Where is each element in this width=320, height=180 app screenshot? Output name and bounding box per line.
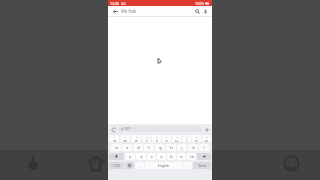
button[interactable]: 7 <box>172 135 181 142</box>
button[interactable]: k <box>188 144 198 151</box>
button[interactable]: 0 <box>202 135 211 142</box>
button[interactable]: . <box>183 162 192 169</box>
staticText: 2 <box>124 135 126 138</box>
staticText: r <box>146 138 148 142</box>
button[interactable]: j <box>177 144 187 151</box>
staticText: Enter <box>198 164 207 168</box>
staticText: , <box>139 164 140 168</box>
button[interactable]: a <box>111 144 121 151</box>
button[interactable]: life hak <box>121 6 193 16</box>
staticText: l <box>203 145 205 150</box>
button[interactable]: g <box>155 144 165 151</box>
staticText: 6 <box>166 135 168 138</box>
staticText: z <box>129 154 131 159</box>
staticText: m <box>190 154 194 159</box>
staticText: 3 <box>136 135 138 138</box>
staticText: o <box>195 138 198 142</box>
button[interactable]: x <box>136 153 146 160</box>
staticText: 12:06 <box>110 1 119 6</box>
button[interactable]: Touch indicator <box>22 150 48 176</box>
staticText: 0 <box>206 135 208 138</box>
button[interactable]: English <box>145 162 182 169</box>
staticText: u <box>175 138 178 142</box>
staticText: 4 <box>146 135 148 138</box>
staticText: i <box>186 138 188 142</box>
button[interactable]: z <box>125 153 135 160</box>
staticText: 8 <box>186 135 188 138</box>
button[interactable]: d <box>133 144 143 151</box>
staticText: e <box>135 138 138 142</box>
button[interactable]: Search <box>193 7 201 15</box>
button[interactable]: Apparel <box>82 150 108 176</box>
staticText: 5 <box>156 135 158 138</box>
staticText: life hak <box>121 8 137 14</box>
staticText: t <box>156 138 158 142</box>
button[interactable]: Enter <box>193 162 211 169</box>
button[interactable]: Google assistant <box>110 126 117 133</box>
button[interactable]: Emoji <box>125 162 134 169</box>
staticText: 4G <box>121 1 126 6</box>
button[interactable]: Shift <box>109 153 124 160</box>
button[interactable]: 5 <box>152 135 161 142</box>
button[interactable]: Emoji reaction <box>278 150 304 176</box>
button[interactable]: , <box>135 162 144 169</box>
staticText: . <box>187 164 188 168</box>
staticText: p <box>205 138 208 142</box>
button[interactable]: 9 <box>192 135 201 142</box>
staticText: b <box>170 154 173 159</box>
button[interactable]: n <box>177 153 186 160</box>
staticText: d <box>137 145 140 150</box>
staticText: 7 <box>176 135 178 138</box>
staticText: a <box>115 145 118 150</box>
button[interactable]: h <box>166 144 176 151</box>
staticText: s <box>126 145 128 150</box>
staticText: GIF <box>125 127 131 131</box>
staticText: y <box>165 138 168 142</box>
button[interactable]: 8 <box>182 135 191 142</box>
staticText: 100% <box>195 1 204 6</box>
button[interactable]: Voice search <box>201 7 209 15</box>
button[interactable]: l <box>199 144 209 151</box>
staticText: w <box>123 138 127 142</box>
staticText: 9 <box>196 135 198 138</box>
button[interactable]: 6 <box>162 135 171 142</box>
staticText: English <box>158 164 169 168</box>
button[interactable]: m <box>187 153 196 160</box>
staticText: q <box>113 138 116 142</box>
button[interactable]: b <box>167 153 176 160</box>
button[interactable]: 3 <box>131 135 141 142</box>
button[interactable]: c <box>147 153 156 160</box>
staticText: n <box>180 154 183 159</box>
staticText: f <box>148 145 150 150</box>
button[interactable]: Backspace <box>197 153 211 160</box>
staticText: h <box>170 145 173 150</box>
staticText: j <box>181 145 183 150</box>
staticText: g <box>159 145 162 150</box>
button[interactable]: 4 <box>142 135 151 142</box>
button[interactable]: Keyboard settings <box>203 126 210 133</box>
staticText: c <box>151 154 153 159</box>
staticText: k <box>192 145 195 150</box>
button[interactable]: v <box>157 153 166 160</box>
staticText: v <box>160 154 163 159</box>
staticText: 1 <box>114 135 116 138</box>
staticText: ?123 <box>113 164 120 168</box>
button[interactable]: Back <box>111 7 119 15</box>
staticText: x <box>140 154 143 159</box>
button[interactable]: GIF <box>118 126 202 132</box>
button[interactable]: f <box>144 144 154 151</box>
button[interactable]: 2 <box>120 135 130 142</box>
button[interactable]: s <box>122 144 132 151</box>
button[interactable]: 1 <box>109 135 119 142</box>
button[interactable]: ?123 <box>109 162 124 169</box>
